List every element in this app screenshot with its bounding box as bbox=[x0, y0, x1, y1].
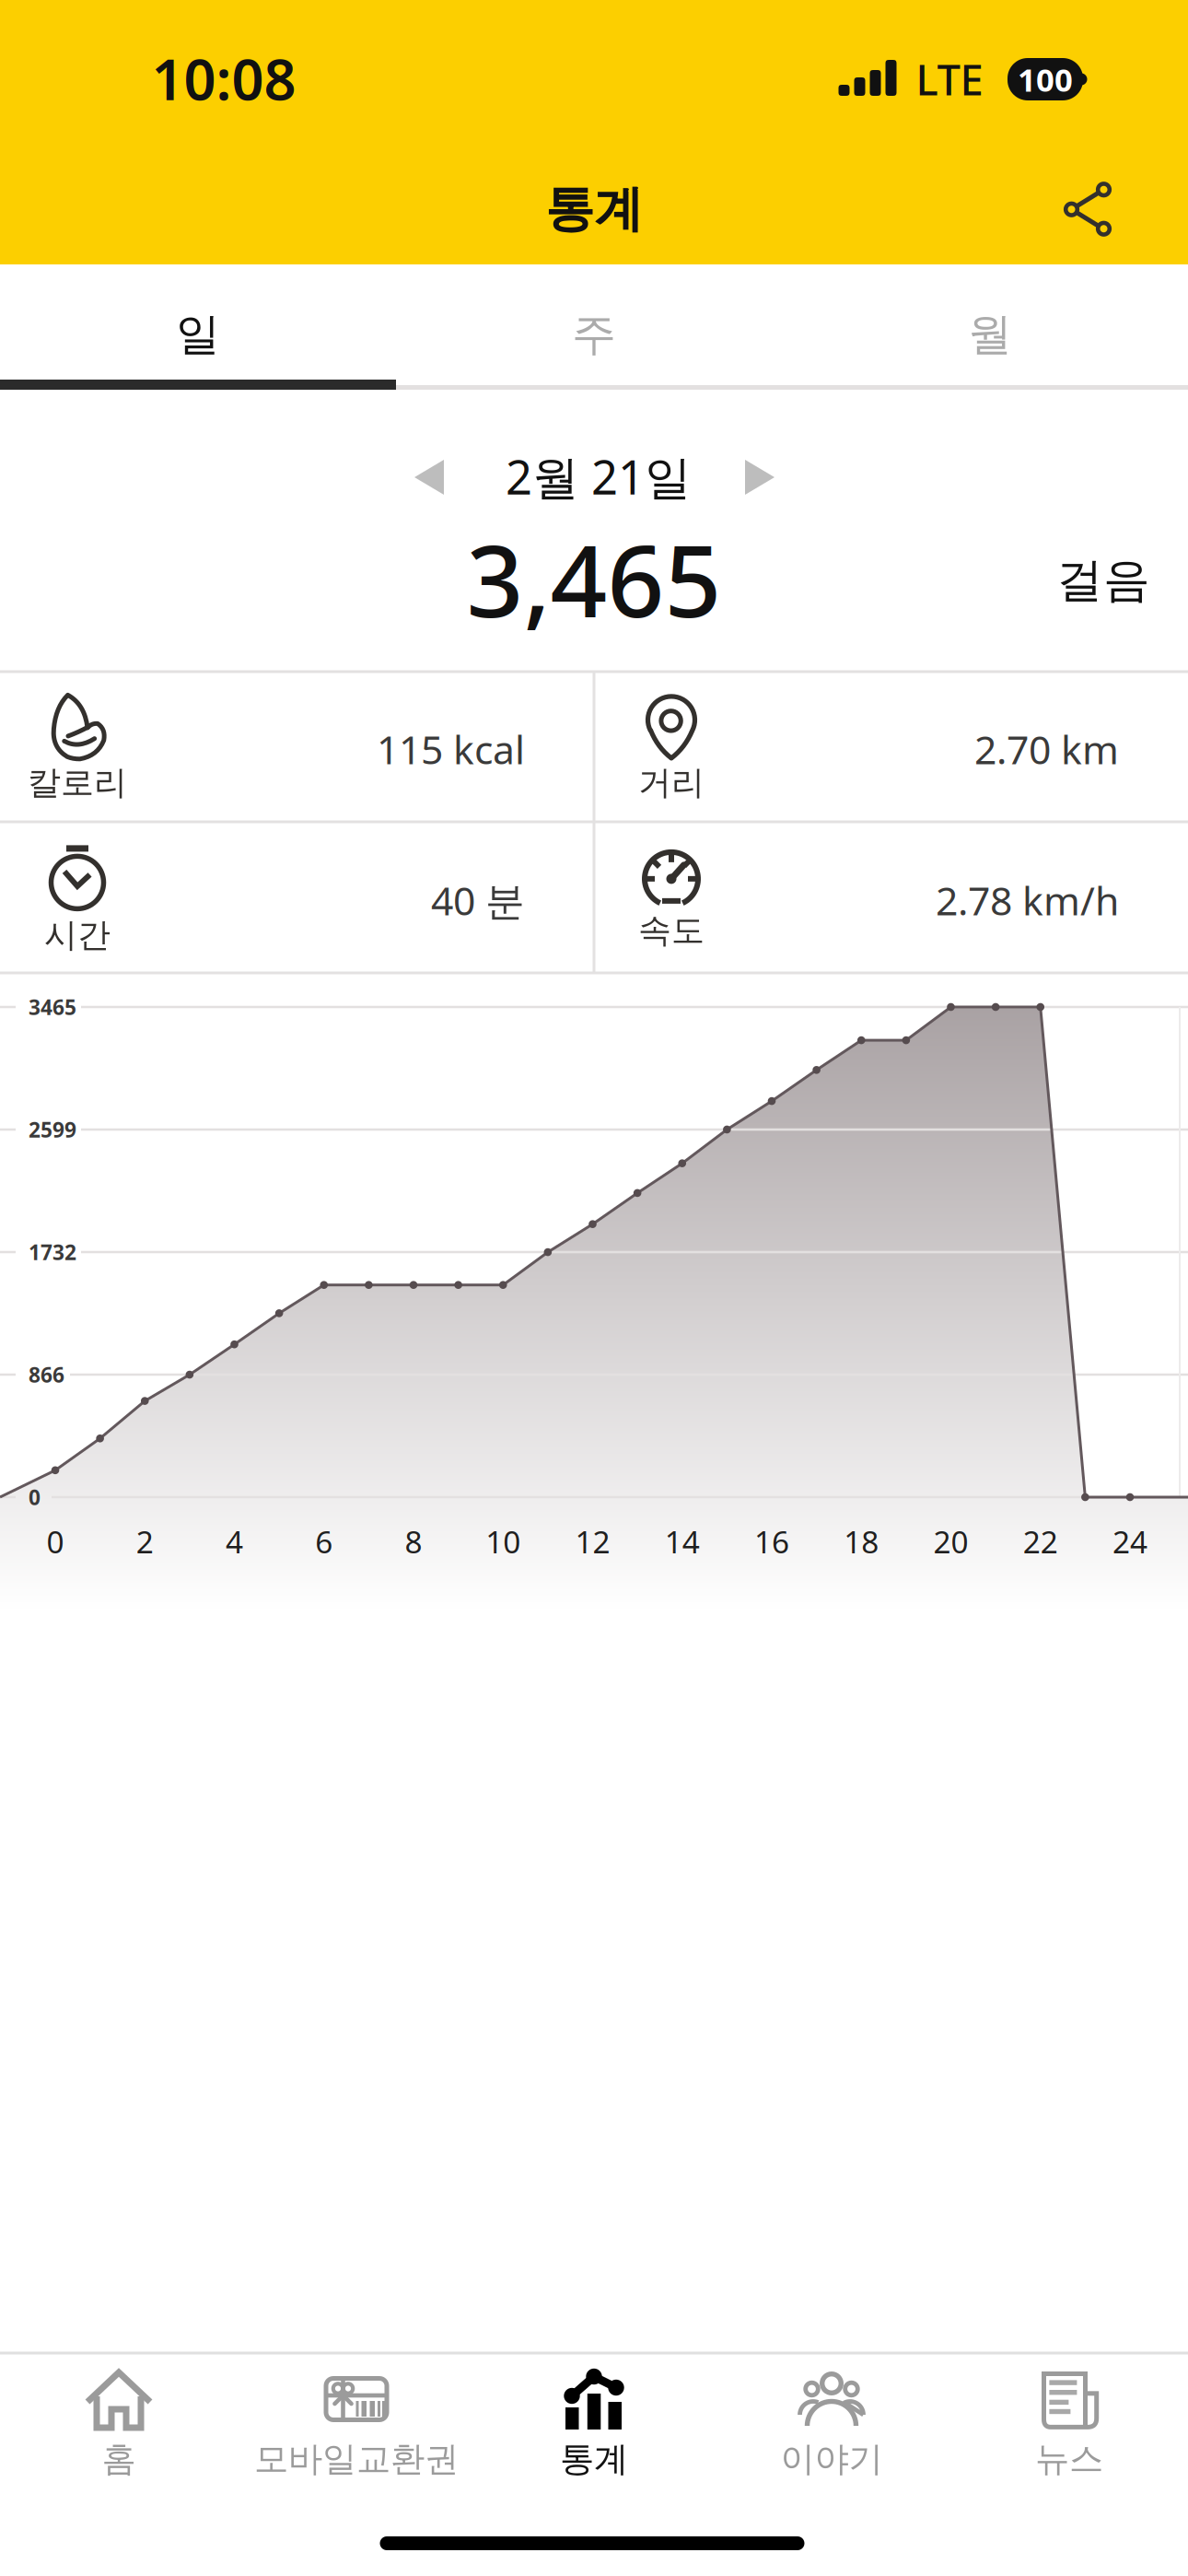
staticText: 속도 bbox=[638, 910, 705, 951]
staticText: 이야기 bbox=[780, 2438, 883, 2480]
button[interactable]: 일 bbox=[0, 275, 396, 394]
staticText: 20 bbox=[933, 1521, 968, 1562]
button[interactable]: 주 bbox=[396, 275, 792, 394]
staticText: 100 bbox=[1018, 58, 1073, 100]
staticText: 거리 bbox=[638, 762, 705, 803]
button[interactable]: Share bbox=[1055, 177, 1120, 241]
staticText: 4 bbox=[226, 1521, 243, 1562]
button[interactable]: 뉴스 bbox=[950, 2355, 1188, 2521]
staticText: 월 bbox=[968, 307, 1012, 362]
staticText: 시간 bbox=[44, 915, 111, 955]
button[interactable]: 월 bbox=[792, 275, 1188, 394]
staticText: 10 bbox=[486, 1521, 521, 1562]
staticText: 2 bbox=[136, 1521, 154, 1562]
staticText: 0 bbox=[47, 1521, 64, 1562]
staticText: LTE bbox=[916, 52, 983, 107]
staticText: 2599 bbox=[29, 1116, 76, 1143]
staticText: 18 bbox=[844, 1521, 879, 1562]
staticText: 3465 bbox=[29, 993, 76, 1021]
button[interactable]: Previous day bbox=[413, 460, 445, 495]
staticText: 40 분 bbox=[431, 874, 525, 926]
staticText: 홈 bbox=[102, 2438, 136, 2480]
staticText: 22 bbox=[1023, 1521, 1058, 1562]
staticText: 주 bbox=[572, 307, 616, 362]
staticText: 칼로리 bbox=[28, 762, 127, 803]
staticText: 866 bbox=[29, 1361, 64, 1388]
button[interactable]: Next day bbox=[744, 460, 775, 495]
staticText: 115 kcal bbox=[377, 723, 525, 775]
staticText: 16 bbox=[754, 1521, 789, 1562]
staticText: 통계 bbox=[560, 2438, 628, 2480]
staticText: 모바일교환권 bbox=[254, 2438, 459, 2480]
staticText: 2.78 km/h bbox=[936, 874, 1119, 926]
staticText: 24 bbox=[1112, 1521, 1147, 1562]
button[interactable]: 이야기 bbox=[713, 2355, 950, 2521]
staticText: 일 bbox=[176, 307, 220, 362]
staticText: 0 bbox=[29, 1483, 41, 1511]
staticText: 14 bbox=[665, 1521, 700, 1562]
staticText: 뉴스 bbox=[1035, 2438, 1103, 2480]
staticText: 걸음 bbox=[1056, 552, 1150, 609]
button[interactable]: 통계 bbox=[475, 2355, 713, 2521]
staticText: 10:08 bbox=[151, 41, 296, 116]
button[interactable]: 홈 bbox=[0, 2355, 238, 2521]
staticText: 6 bbox=[315, 1521, 333, 1562]
button[interactable]: 모바일교환권 bbox=[238, 2355, 475, 2521]
staticText: 1732 bbox=[29, 1238, 76, 1266]
staticText: 3,465 bbox=[466, 513, 722, 645]
staticText: 2.70 km bbox=[974, 723, 1119, 775]
staticText: 2월 21일 bbox=[506, 445, 692, 507]
staticText: 8 bbox=[405, 1521, 422, 1562]
staticText: 통계 bbox=[545, 179, 643, 239]
staticText: 12 bbox=[575, 1521, 610, 1562]
